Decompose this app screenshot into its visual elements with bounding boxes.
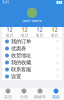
button[interactable]: 收货地址 xyxy=(2,52,62,59)
button[interactable]: 分类 xyxy=(16,88,32,99)
staticText: ▮▮▮ xyxy=(56,0,62,4)
staticText: > xyxy=(56,66,59,73)
staticText: 设置 xyxy=(11,73,21,80)
staticText: > xyxy=(56,45,59,52)
button[interactable]: 我的订单 xyxy=(2,38,62,45)
staticText: 项目 xyxy=(50,33,58,38)
staticText: > xyxy=(56,52,59,59)
staticText: 12 xyxy=(6,26,12,33)
staticText: 首页 xyxy=(4,94,12,99)
button[interactable]: 优惠券 xyxy=(2,45,62,52)
staticText: 优惠券 xyxy=(11,45,26,52)
button[interactable]: 联系客服 xyxy=(2,66,62,73)
staticText: 12 xyxy=(21,26,27,33)
staticText: 收货地址 xyxy=(11,52,31,59)
staticText: 联系客服 xyxy=(11,66,31,73)
button[interactable]: 我的 xyxy=(48,88,64,99)
button[interactable]: 我的收藏 xyxy=(2,59,62,66)
staticText: > xyxy=(56,73,59,80)
staticText: > xyxy=(56,59,59,66)
button[interactable]: 设置 xyxy=(2,73,62,80)
staticText: > xyxy=(56,38,59,45)
staticText: 项目 xyxy=(20,33,28,38)
staticText: 我的 xyxy=(52,94,60,99)
staticText: user name xyxy=(22,18,41,23)
staticText: 项目 xyxy=(35,33,43,38)
staticText: 项目 xyxy=(5,33,13,38)
staticText: 12 xyxy=(51,26,57,33)
staticText: 我的订单 xyxy=(11,38,31,45)
button[interactable]: 首页 xyxy=(0,88,16,99)
staticText: 购物车 xyxy=(34,94,46,99)
staticText: 9:41 xyxy=(2,0,9,5)
button[interactable]: 购物车 xyxy=(32,88,48,99)
staticText: 分类 xyxy=(20,94,28,99)
staticText: 12 xyxy=(36,26,42,33)
staticText: 我的收藏 xyxy=(11,59,31,66)
